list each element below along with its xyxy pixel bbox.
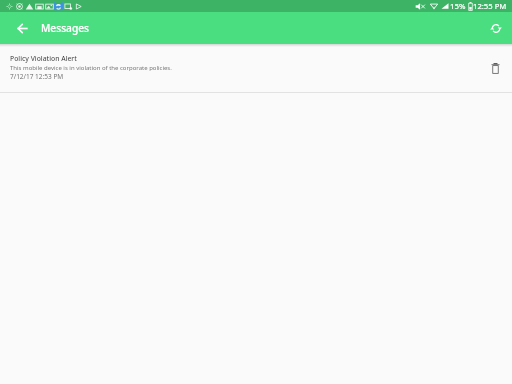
button[interactable]: Policy Violation Alert	[0, 47, 512, 93]
staticText: This mobile device is in violation of th…	[10, 64, 172, 72]
button[interactable]: Back	[6, 12, 38, 44]
staticText: 15%	[450, 1, 466, 12]
staticText: 7/12/17 12:53 PM	[10, 72, 64, 81]
staticText: Messages	[41, 21, 90, 35]
staticText: Policy Violation Alert	[10, 54, 77, 63]
button[interactable]: Refresh	[480, 12, 512, 44]
button[interactable]: Delete	[483, 56, 507, 80]
staticText: 12:55 PM	[473, 1, 507, 11]
